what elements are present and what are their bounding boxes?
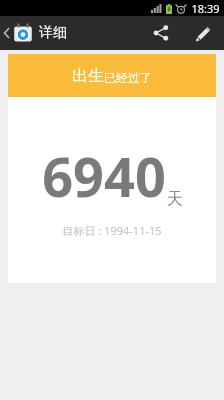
staticText: 详细 bbox=[39, 24, 67, 42]
staticText: 目标日 : 1994-11-15 bbox=[62, 223, 162, 238]
button[interactable]: Edit bbox=[182, 16, 224, 50]
staticText: 18:39 bbox=[191, 1, 220, 16]
button[interactable]: Share bbox=[140, 16, 182, 50]
staticText: 天 bbox=[167, 189, 183, 209]
button[interactable]: Back bbox=[0, 16, 71, 50]
staticText: 已经过了 bbox=[104, 70, 152, 85]
staticText: 出生 bbox=[72, 66, 104, 86]
button[interactable]: 出生 bbox=[8, 54, 216, 283]
staticText: 6940 bbox=[42, 139, 166, 213]
